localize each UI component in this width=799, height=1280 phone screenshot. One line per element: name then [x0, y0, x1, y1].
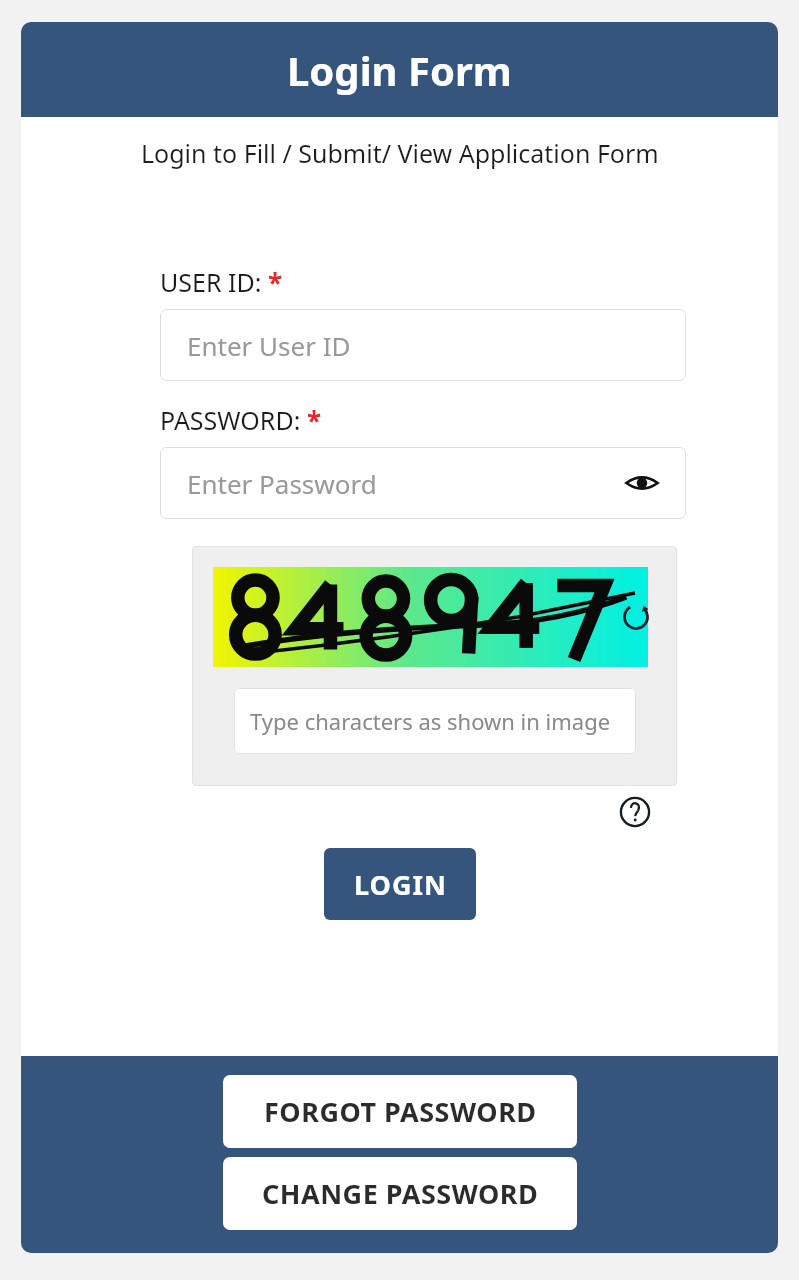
staticText: Login to Fill / Submit/ View Application…: [141, 136, 659, 170]
staticText: Enter User ID: [187, 328, 351, 363]
button[interactable]: Enter User ID: [160, 309, 686, 381]
staticText: CHANGE PASSWORD: [262, 1175, 539, 1212]
staticText: Enter Password: [187, 466, 377, 501]
button[interactable]: Show password: [622, 463, 662, 503]
button[interactable]: Enter Password: [160, 447, 686, 519]
staticText: Login Form: [287, 43, 512, 97]
button[interactable]: Refresh captcha: [614, 595, 658, 639]
staticText: *: [307, 403, 322, 438]
button[interactable]: LOGIN: [324, 848, 476, 920]
staticText: USER ID:: [160, 265, 262, 299]
button[interactable]: FORGOT PASSWORD: [223, 1075, 577, 1148]
staticText: LOGIN: [354, 866, 447, 903]
staticText: Type characters as shown in image: [250, 706, 611, 736]
staticText: PASSWORD:: [160, 403, 301, 437]
staticText: *: [268, 265, 283, 300]
staticText: FORGOT PASSWORD: [264, 1093, 537, 1130]
button[interactable]: Type characters as shown in image: [234, 688, 636, 754]
button[interactable]: Help: [616, 793, 654, 831]
button[interactable]: CHANGE PASSWORD: [223, 1157, 577, 1230]
